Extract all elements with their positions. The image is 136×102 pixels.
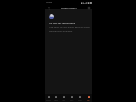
staticText: Home bbox=[46, 99, 51, 101]
staticText: No ads yet responsible bbox=[49, 21, 76, 24]
button[interactable]: Feed bbox=[52, 94, 60, 102]
button[interactable]: Me bbox=[84, 94, 92, 102]
staticText: Cart bbox=[70, 99, 74, 101]
button[interactable]: Live bbox=[60, 94, 68, 102]
staticText: Feed bbox=[54, 99, 58, 101]
button[interactable]: Chat bbox=[76, 94, 84, 102]
staticText: Live bbox=[62, 99, 66, 101]
staticText: 10:24 bbox=[46, 1, 52, 4]
staticText: Chat bbox=[78, 99, 82, 101]
button[interactable]: Back bbox=[47, 6, 50, 9]
button[interactable]: Home bbox=[45, 94, 52, 102]
staticText: Me bbox=[87, 99, 90, 101]
staticText: Add items to your public Records studio … bbox=[49, 26, 90, 33]
staticText: Order history bbox=[61, 6, 77, 9]
button[interactable]: Help bbox=[87, 6, 90, 9]
button[interactable]: Cart bbox=[68, 94, 76, 102]
